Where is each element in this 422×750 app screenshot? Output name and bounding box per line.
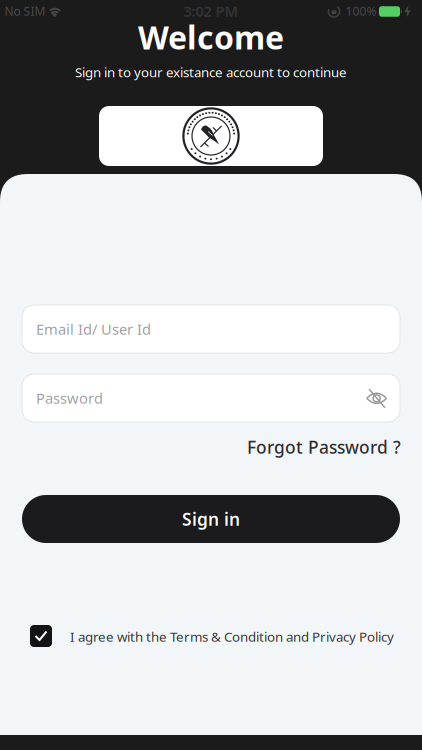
staticText: Welcome <box>138 16 284 58</box>
staticText: No SIM <box>4 3 45 19</box>
staticText: Sign in <box>182 507 240 530</box>
button[interactable]: Password <box>22 374 400 422</box>
button[interactable]: Sign in <box>22 495 400 543</box>
staticText: Password <box>36 388 103 408</box>
staticText: Forgot Password ? <box>247 435 401 458</box>
button[interactable]: Show password <box>365 387 387 408</box>
staticText: I agree with the Terms & Condition and P… <box>70 628 394 645</box>
button[interactable]: I agree with the Terms & Condition and P… <box>30 625 52 647</box>
staticText: Email Id/ User Id <box>36 319 151 339</box>
staticText: 100% <box>345 3 376 19</box>
button[interactable]: Email Id/ User Id <box>22 305 400 353</box>
staticText: Sign in to your existance account to con… <box>75 63 347 81</box>
staticText: 3:02 PM <box>183 1 238 21</box>
button[interactable]: Forgot Password ? <box>247 435 401 458</box>
